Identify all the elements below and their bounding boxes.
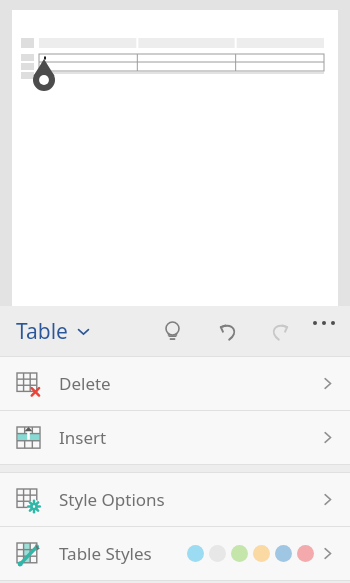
button[interactable]: Style Options bbox=[0, 473, 350, 526]
button[interactable]: Table bbox=[0, 311, 100, 352]
button[interactable]: Redo bbox=[258, 309, 302, 353]
staticText: Table bbox=[16, 317, 68, 346]
button[interactable]: Tell me what you want to do bbox=[150, 309, 194, 353]
button[interactable]: Delete bbox=[0, 357, 350, 410]
staticText: Table Styles bbox=[59, 542, 152, 565]
staticText: Insert bbox=[59, 426, 107, 449]
staticText: Style Options bbox=[59, 488, 165, 511]
staticText: Delete bbox=[59, 372, 111, 395]
button[interactable]: More options bbox=[302, 309, 346, 353]
button[interactable]: Insert bbox=[0, 411, 350, 464]
button[interactable]: Table Styles bbox=[0, 527, 350, 580]
button[interactable]: Undo bbox=[206, 309, 250, 353]
